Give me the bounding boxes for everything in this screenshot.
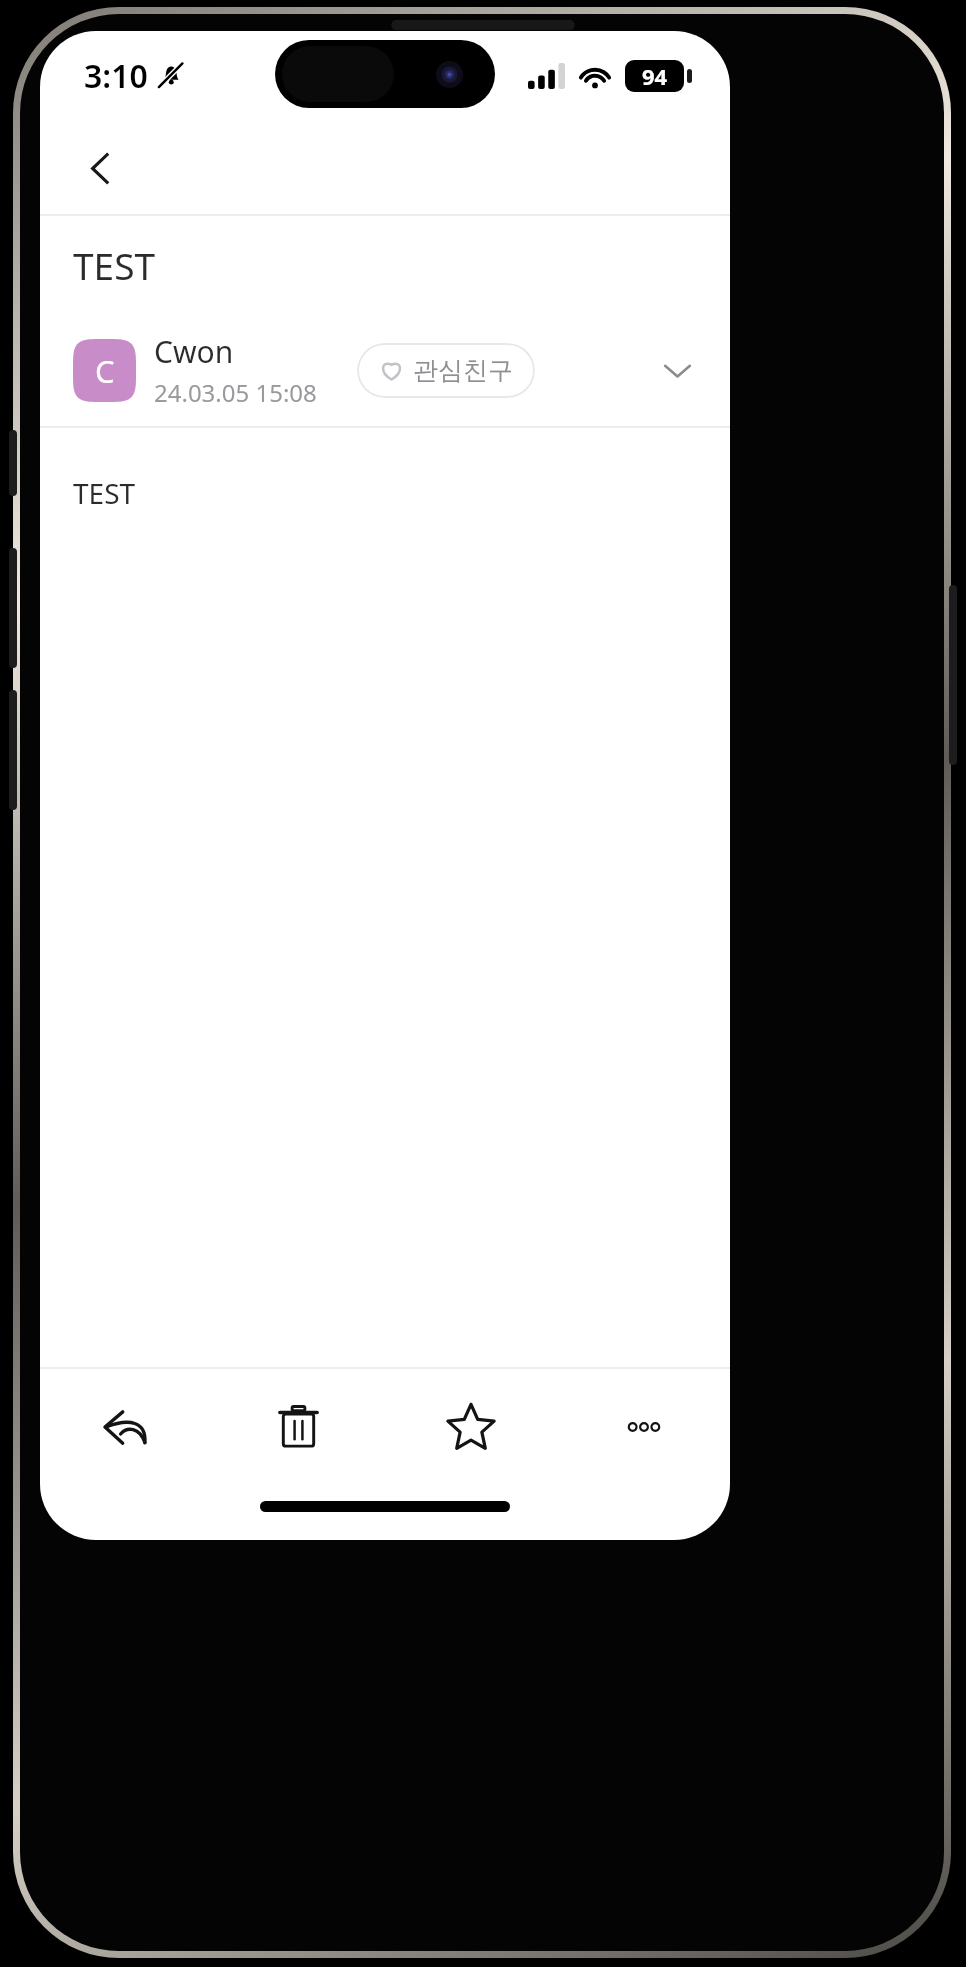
button[interactable]: Expand details: [648, 341, 706, 399]
staticText: C: [95, 350, 115, 392]
button[interactable]: Favorite: [384, 1369, 557, 1484]
button[interactable]: Reply: [40, 1369, 212, 1484]
staticText: TEST: [73, 240, 156, 290]
button[interactable]: Back: [68, 136, 132, 200]
staticText: 관심친구: [413, 355, 513, 386]
staticText: 3:10: [84, 54, 148, 98]
button[interactable]: More options: [557, 1369, 730, 1484]
button[interactable]: Delete: [212, 1369, 384, 1484]
button[interactable]: C: [40, 314, 730, 426]
button[interactable]: 관심친구: [357, 343, 535, 398]
staticText: TEST: [73, 474, 136, 512]
staticText: 24.03.05 15:08: [154, 376, 317, 409]
staticText: 94: [642, 61, 668, 91]
staticText: Cwon: [154, 331, 234, 372]
